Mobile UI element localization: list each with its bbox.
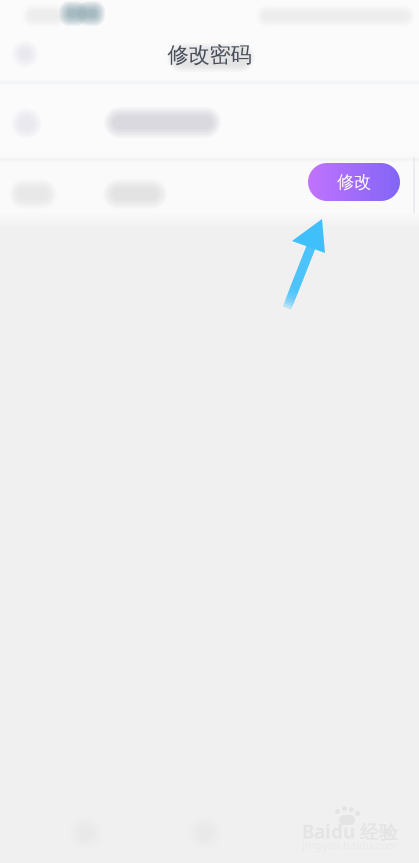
staticText: 修改密码: [167, 42, 251, 68]
button[interactable]: Back: [2, 31, 48, 77]
staticText: 修改: [337, 171, 371, 193]
staticText: Baidu 经验: [302, 819, 398, 844]
button[interactable]: 修改: [308, 163, 400, 201]
